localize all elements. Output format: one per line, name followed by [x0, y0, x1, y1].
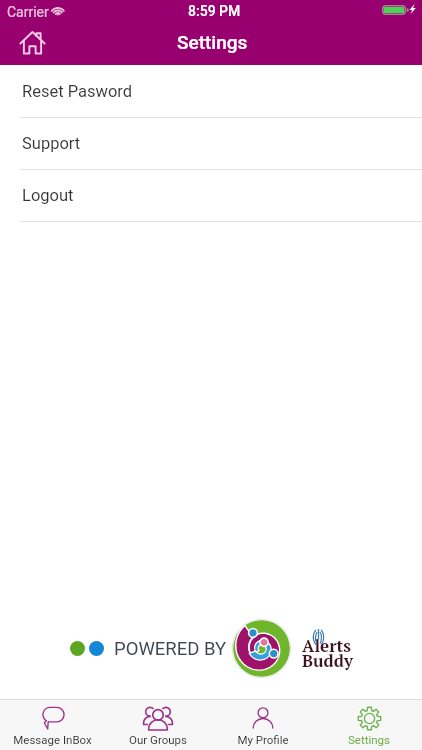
staticText: Settings: [348, 733, 390, 746]
button[interactable]: Reset Pasword: [0, 66, 422, 118]
button[interactable]: Our Groups: [105, 700, 210, 750]
staticText: Settings: [177, 31, 267, 53]
button[interactable]: Logout: [0, 170, 422, 222]
button[interactable]: Support: [0, 118, 422, 170]
button[interactable]: Message InBox: [0, 700, 105, 750]
staticText: Message InBox: [13, 733, 92, 746]
button[interactable]: Settings: [316, 700, 422, 750]
staticText: Carrier: [7, 4, 67, 20]
button[interactable]: Home: [11, 22, 53, 64]
staticText: My Profile: [237, 733, 289, 746]
staticText: 8:59 PM: [188, 3, 258, 19]
staticText: Buddy: [302, 649, 372, 672]
staticText: Reset Pasword: [22, 82, 133, 101]
staticText: Support: [22, 134, 81, 153]
staticText: POWERED BY: [114, 638, 254, 660]
staticText: Logout: [22, 186, 74, 205]
staticText: Our Groups: [129, 733, 187, 746]
staticText: Alerts: [302, 634, 372, 657]
button[interactable]: My Profile: [210, 700, 316, 750]
